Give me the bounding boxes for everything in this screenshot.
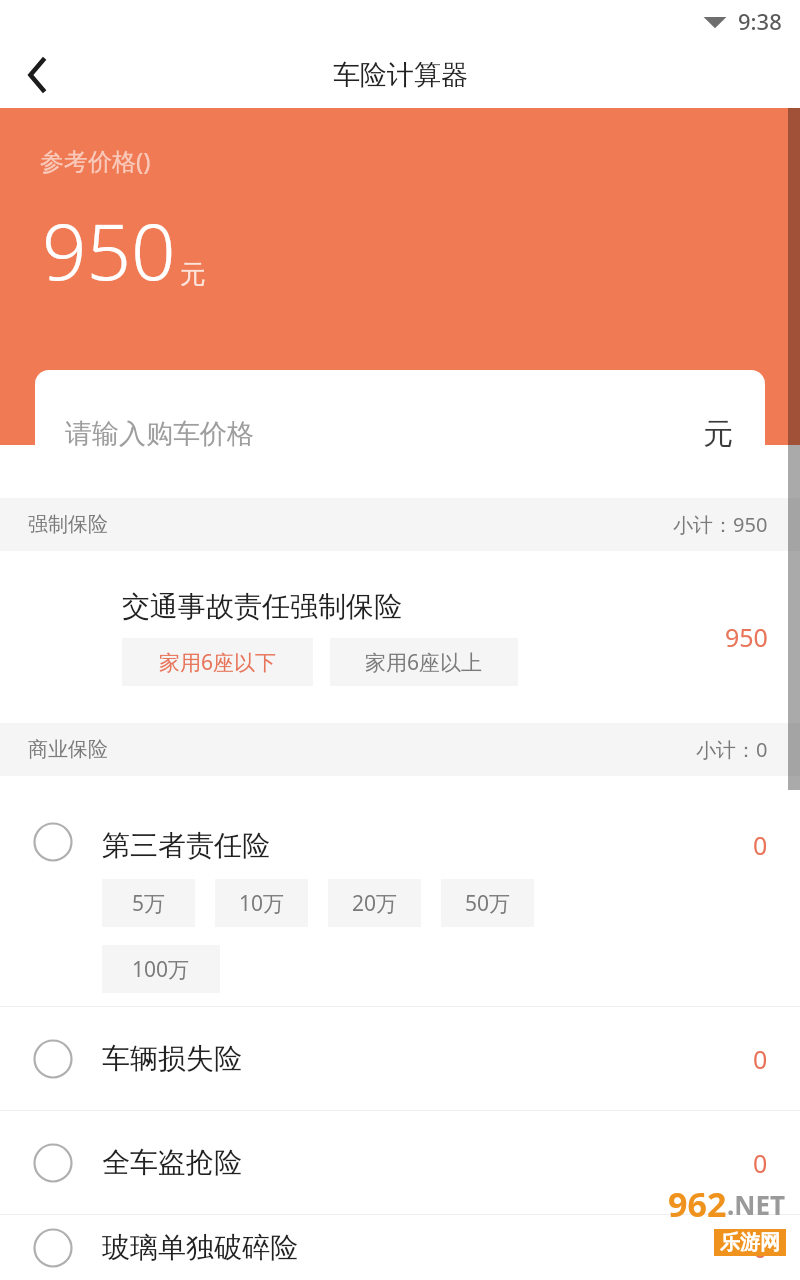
staticText: 商业保险: [28, 737, 108, 762]
staticText: .NET: [727, 1187, 786, 1222]
staticText: 962: [668, 1181, 727, 1227]
staticText: 强制保险: [28, 512, 108, 537]
staticText: 0: [753, 1146, 768, 1180]
staticText: 950: [42, 197, 176, 303]
staticText: 100万: [132, 955, 190, 984]
staticText: 交通事故责任强制保险: [122, 589, 402, 624]
button[interactable]: 20万: [328, 879, 421, 927]
staticText: 第三者责任险: [102, 828, 270, 863]
button[interactable]: 第三者责任险: [0, 776, 800, 1006]
staticText: 请输入购车价格: [65, 417, 254, 451]
staticText: 全车盗抢险: [102, 1145, 753, 1180]
staticText: 家用6座以下: [159, 648, 277, 677]
staticText: 20万: [352, 889, 398, 918]
button[interactable]: 5万: [102, 879, 195, 927]
button[interactable]: 家用6座以下: [122, 638, 313, 686]
button[interactable]: 10万: [215, 879, 308, 927]
staticText: 玻璃单独破碎险: [102, 1230, 753, 1265]
staticText: 950: [725, 620, 768, 654]
staticText: 0: [753, 1231, 768, 1265]
button[interactable]: 请输入购车价格: [35, 370, 765, 498]
button[interactable]: 玻璃单独破碎险: [0, 1215, 800, 1280]
staticText: 小计：0: [696, 736, 768, 763]
button[interactable]: 100万: [102, 945, 220, 993]
button[interactable]: 全车盗抢险: [0, 1111, 800, 1214]
staticText: 50万: [465, 889, 511, 918]
staticText: 元: [703, 415, 733, 453]
button[interactable]: 家用6座以上: [330, 638, 518, 686]
staticText: 车辆损失险: [102, 1041, 753, 1076]
staticText: 小计：950: [673, 511, 768, 538]
staticText: 9:38: [738, 6, 782, 36]
staticText: 5万: [132, 889, 166, 918]
staticText: 0: [753, 828, 768, 862]
button[interactable]: Back: [0, 42, 74, 108]
staticText: 0: [753, 1042, 768, 1076]
staticText: 参考价格(): [40, 144, 151, 177]
staticText: 家用6座以上: [365, 648, 483, 677]
button[interactable]: 车辆损失险: [0, 1007, 800, 1110]
staticText: 10万: [239, 889, 285, 918]
staticText: 车险计算器: [333, 58, 468, 92]
staticText: 乐游网: [720, 1230, 780, 1255]
button[interactable]: 50万: [441, 879, 534, 927]
staticText: 元: [180, 258, 206, 291]
